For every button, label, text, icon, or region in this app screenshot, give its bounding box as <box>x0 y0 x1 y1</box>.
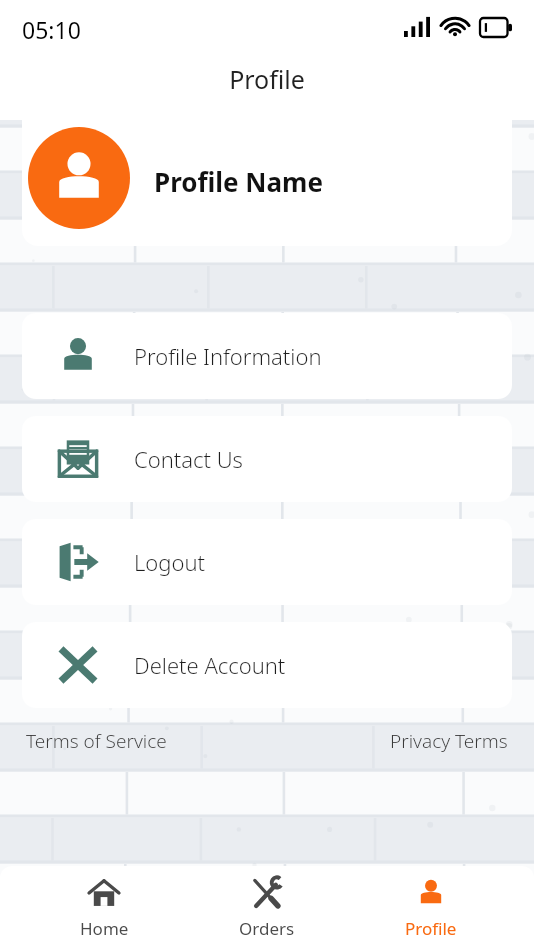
button[interactable]: Orders <box>207 870 327 946</box>
staticText: Orders <box>239 917 295 940</box>
staticText: Logout <box>134 547 206 577</box>
button[interactable]: Profile Name <box>22 120 512 246</box>
staticText: Home <box>80 917 129 940</box>
button[interactable]: Privacy Terms <box>390 728 508 754</box>
staticText: Profile Name <box>154 164 323 199</box>
button[interactable]: Terms of Service <box>26 728 167 754</box>
staticText: Contact Us <box>134 444 243 474</box>
button[interactable]: Home <box>44 870 164 946</box>
staticText: Delete Account <box>134 650 286 680</box>
button[interactable]: Profile Information <box>22 313 512 399</box>
button[interactable]: Contact Us <box>22 416 512 502</box>
staticText: Profile <box>405 917 457 940</box>
button[interactable]: Logout <box>22 519 512 605</box>
staticText: Profile <box>229 62 305 96</box>
staticText: Profile Information <box>134 341 322 371</box>
staticText: 05:10 <box>22 14 81 45</box>
button[interactable]: Delete Account <box>22 622 512 708</box>
button[interactable]: Profile <box>371 870 491 946</box>
